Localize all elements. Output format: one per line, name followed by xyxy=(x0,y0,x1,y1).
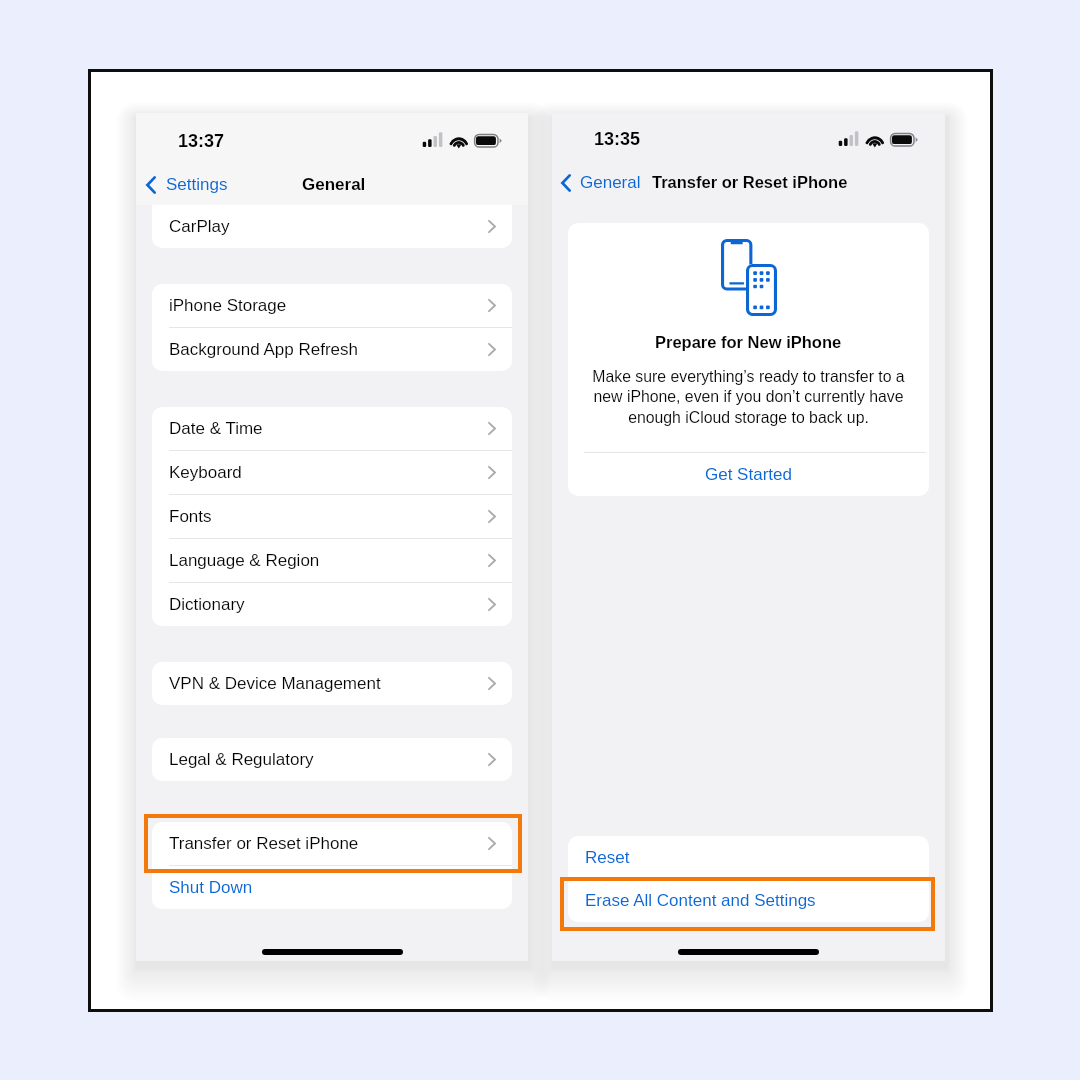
staticText: Fonts xyxy=(169,507,212,526)
button[interactable]: Language & Region xyxy=(152,539,512,582)
button[interactable]: Date & Time xyxy=(152,407,512,450)
button[interactable]: Background App Refresh xyxy=(152,328,512,371)
button[interactable]: Erase All Content and Settings xyxy=(568,879,929,922)
button[interactable]: Transfer or Reset iPhone xyxy=(152,822,512,865)
staticText: Transfer or Reset iPhone xyxy=(169,834,359,853)
staticText: Keyboard xyxy=(169,463,242,482)
other: Highlight Erase All Content and Settings xyxy=(560,877,935,931)
staticText: General xyxy=(302,175,366,194)
button[interactable]: Keyboard xyxy=(152,451,512,494)
other: Highlight Transfer or Reset iPhone xyxy=(144,814,522,873)
staticText: iPhone Storage xyxy=(169,296,287,315)
staticText: Get Started xyxy=(705,465,792,484)
button[interactable]: Legal & Regulatory xyxy=(152,738,512,781)
staticText: Make sure everything’s ready to transfer… xyxy=(592,368,905,427)
staticText: Date & Time xyxy=(169,419,263,438)
button[interactable]: Dictionary xyxy=(152,583,512,626)
button[interactable]: Fonts xyxy=(152,495,512,538)
button[interactable]: VPN & Device Management xyxy=(152,662,512,705)
staticText: Transfer or Reset iPhone xyxy=(652,173,848,191)
staticText: General xyxy=(580,173,641,192)
staticText: CarPlay xyxy=(169,217,230,236)
staticText: Legal & Regulatory xyxy=(169,750,314,769)
staticText: Shut Down xyxy=(169,878,253,897)
staticText: Erase All Content and Settings xyxy=(585,891,816,910)
button[interactable]: Get Started xyxy=(568,453,929,496)
staticText: VPN & Device Management xyxy=(169,674,381,693)
button[interactable]: Back to Settings xyxy=(146,175,228,194)
staticText: Settings xyxy=(166,175,228,194)
button[interactable]: Reset xyxy=(568,836,929,879)
button[interactable]: Shut Down xyxy=(152,866,512,909)
button[interactable]: CarPlay xyxy=(152,205,512,248)
staticText: Language & Region xyxy=(169,551,320,570)
staticText: Dictionary xyxy=(169,595,245,614)
button[interactable]: iPhone Storage xyxy=(152,284,512,327)
staticText: Reset xyxy=(585,848,630,867)
button[interactable]: Back to General xyxy=(561,173,641,192)
staticText: 13:37 xyxy=(178,131,225,151)
staticText: 13:35 xyxy=(594,129,641,149)
staticText: Prepare for New iPhone xyxy=(655,333,842,351)
staticText: Background App Refresh xyxy=(169,340,359,359)
